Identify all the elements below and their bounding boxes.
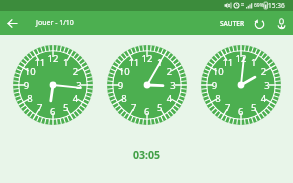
staticText: 69% [254, 2, 264, 9]
button[interactable]: SAUTER [216, 11, 249, 35]
button[interactable]: Back [0, 11, 24, 35]
button[interactable]: Replay [248, 12, 270, 34]
staticText: 15:36 [268, 1, 285, 10]
button[interactable]: Microphone [270, 12, 292, 34]
staticText: 03:05 [133, 148, 160, 162]
staticText: Jouer - 1/10 [36, 18, 74, 28]
staticText: SAUTER [220, 19, 245, 28]
